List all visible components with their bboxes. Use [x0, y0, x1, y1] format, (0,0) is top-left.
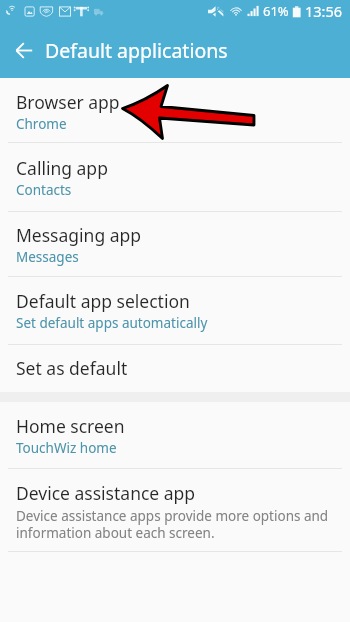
button[interactable]: Back [2, 28, 46, 72]
staticText: Calling app [16, 156, 108, 180]
staticText: Set as default [16, 356, 128, 380]
button[interactable]: Default app selection [0, 277, 350, 344]
staticText: TouchWiz home [16, 439, 117, 457]
staticText: Browser app [16, 90, 120, 114]
staticText: Device assistance apps provide more opti… [16, 507, 334, 542]
button[interactable]: Messaging app [0, 212, 350, 276]
staticText: Home screen [16, 414, 125, 438]
staticText: Default applications [45, 37, 228, 64]
button[interactable]: Home screen [0, 402, 350, 468]
staticText: Device assistance app [16, 481, 196, 505]
button[interactable]: Set as default [0, 345, 350, 392]
staticText: Set default apps automatically [16, 314, 208, 332]
staticText: 61% [263, 2, 289, 20]
staticText: Contacts [16, 181, 72, 199]
button[interactable]: Browser app [0, 78, 350, 142]
staticText: Messaging app [16, 223, 142, 247]
staticText: Chrome [16, 115, 67, 133]
button[interactable]: Device assistance app [0, 469, 350, 551]
staticText: Messages [16, 248, 79, 266]
button[interactable]: Calling app [0, 143, 350, 211]
staticText: Default app selection [16, 289, 190, 313]
staticText: 13:56 [305, 1, 343, 21]
